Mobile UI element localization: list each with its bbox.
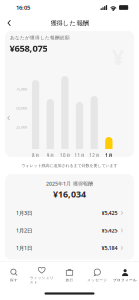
staticText: ¥5,425 xyxy=(101,209,117,217)
staticText: 10月 xyxy=(60,152,70,158)
staticText: 25,000 xyxy=(16,124,27,130)
button[interactable]: ウィッシュリスト xyxy=(28,264,56,287)
staticText: プロフィール xyxy=(113,278,137,282)
button[interactable]: 1月3日 xyxy=(10,204,129,222)
button[interactable]: Back xyxy=(2,16,16,30)
staticText: 11月 xyxy=(75,152,85,158)
button[interactable]: 旅行 xyxy=(56,266,83,285)
staticText: 8月 xyxy=(32,152,39,158)
staticText: 獲得した報酬 xyxy=(50,19,88,27)
staticText: ¥5,425 xyxy=(101,227,117,234)
staticText: 75,000 xyxy=(16,86,27,92)
button[interactable]: プロフィール xyxy=(111,266,139,285)
staticText: ¥5,184 xyxy=(101,244,117,252)
staticText: 12月 xyxy=(89,152,99,158)
staticText: 旅行 xyxy=(65,278,73,282)
staticText: ウィッシュリスト xyxy=(30,275,54,284)
staticText: 1月1日 xyxy=(16,244,32,252)
staticText: 探す xyxy=(10,278,18,282)
staticText: 1月2日 xyxy=(16,227,32,234)
button[interactable]: 探す xyxy=(0,266,28,285)
staticText: 2025年1月 獲得報酬 xyxy=(46,180,93,187)
staticText: 1月3日 xyxy=(16,209,32,217)
button[interactable]: メッセージ xyxy=(83,266,111,285)
staticText: 9月 xyxy=(47,152,54,158)
staticText: ¥658,075 xyxy=(9,42,47,54)
staticText: 16:05 xyxy=(16,3,30,11)
staticText: ウォレット残高に追加されるまで日数を要しています xyxy=(21,163,117,168)
staticText: あなたが獲得した報酬総額 xyxy=(10,35,70,41)
staticText: 1月 xyxy=(105,152,112,158)
button[interactable]: 1月2日 xyxy=(10,222,129,239)
staticText: メッセージ xyxy=(87,278,107,282)
staticText: 50,000 xyxy=(16,105,27,111)
staticText: ¥16,034 xyxy=(53,188,86,200)
staticText: ¥ xyxy=(112,42,124,72)
button[interactable]: 1月1日 xyxy=(10,239,129,257)
